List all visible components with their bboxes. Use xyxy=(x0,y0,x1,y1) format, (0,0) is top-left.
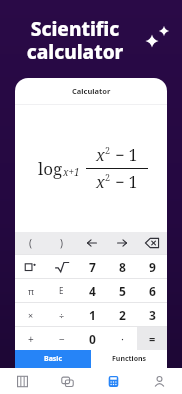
button[interactable]: − xyxy=(46,327,77,350)
staticText: × xyxy=(28,309,34,321)
staticText: 0 xyxy=(89,331,96,347)
button[interactable]: 3 xyxy=(137,303,167,326)
button[interactable]: 4 xyxy=(77,279,107,302)
staticText: Functions xyxy=(112,354,147,364)
staticText: 6 xyxy=(149,283,156,299)
staticText: Basic xyxy=(44,354,63,364)
staticText: Scientific calculator xyxy=(10,16,140,65)
staticText: E xyxy=(59,285,64,296)
button[interactable]: E xyxy=(46,279,77,302)
button[interactable]: Profile xyxy=(136,368,182,394)
staticText: 8 xyxy=(119,259,126,275)
staticText: 9 xyxy=(149,259,156,275)
button[interactable]: Right xyxy=(107,232,137,254)
staticText: − 1 xyxy=(111,171,138,193)
staticText: − xyxy=(59,332,65,346)
staticText: x xyxy=(96,171,105,193)
button[interactable]: Ask xyxy=(45,368,90,394)
button[interactable]: × xyxy=(15,303,46,326)
staticText: 5 xyxy=(119,283,126,299)
button[interactable]: 0 xyxy=(77,327,107,350)
button[interactable]: 5 xyxy=(107,279,137,302)
staticText: 2 xyxy=(105,171,111,183)
staticText: · xyxy=(121,331,124,346)
staticText: 2 xyxy=(119,307,126,323)
button[interactable]: · xyxy=(107,327,137,350)
button[interactable]: Library xyxy=(0,368,45,394)
staticText: log xyxy=(38,157,63,180)
staticText: = xyxy=(149,331,156,346)
staticText: x xyxy=(96,144,105,166)
button[interactable]: 1 xyxy=(77,303,107,326)
button[interactable]: = xyxy=(137,327,167,350)
button[interactable]: 6 xyxy=(137,279,167,302)
staticText: ( xyxy=(29,236,32,250)
button[interactable]: Square xyxy=(15,255,46,278)
staticText: Calculator xyxy=(72,86,111,96)
button[interactable]: Basic xyxy=(15,350,91,368)
button[interactable]: ( xyxy=(15,232,46,254)
staticText: 3 xyxy=(149,307,156,323)
button[interactable]: 7 xyxy=(77,255,107,278)
button[interactable]: Backspace xyxy=(137,232,167,254)
button[interactable]: 8 xyxy=(107,255,137,278)
staticText: x+1 xyxy=(63,165,80,179)
button[interactable]: Left xyxy=(77,232,107,254)
button[interactable]: 9 xyxy=(137,255,167,278)
button[interactable]: 2 xyxy=(107,303,137,326)
staticText: 7 xyxy=(89,259,96,275)
button[interactable]: Square root xyxy=(46,255,77,278)
button[interactable]: Functions xyxy=(91,350,167,368)
button[interactable]: ÷ xyxy=(46,303,77,326)
staticText: ) xyxy=(60,236,63,250)
staticText: ÷ xyxy=(59,309,65,321)
staticText: 4 xyxy=(89,283,96,299)
staticText: 2 xyxy=(105,144,111,156)
button[interactable]: π xyxy=(15,279,46,302)
staticText: − 1 xyxy=(111,144,138,166)
staticText: 1 xyxy=(89,307,96,323)
button[interactable]: + xyxy=(15,327,46,350)
staticText: π xyxy=(28,285,34,297)
button[interactable]: ) xyxy=(46,232,77,254)
button[interactable]: Calculator xyxy=(90,368,136,394)
staticText: + xyxy=(28,332,34,346)
